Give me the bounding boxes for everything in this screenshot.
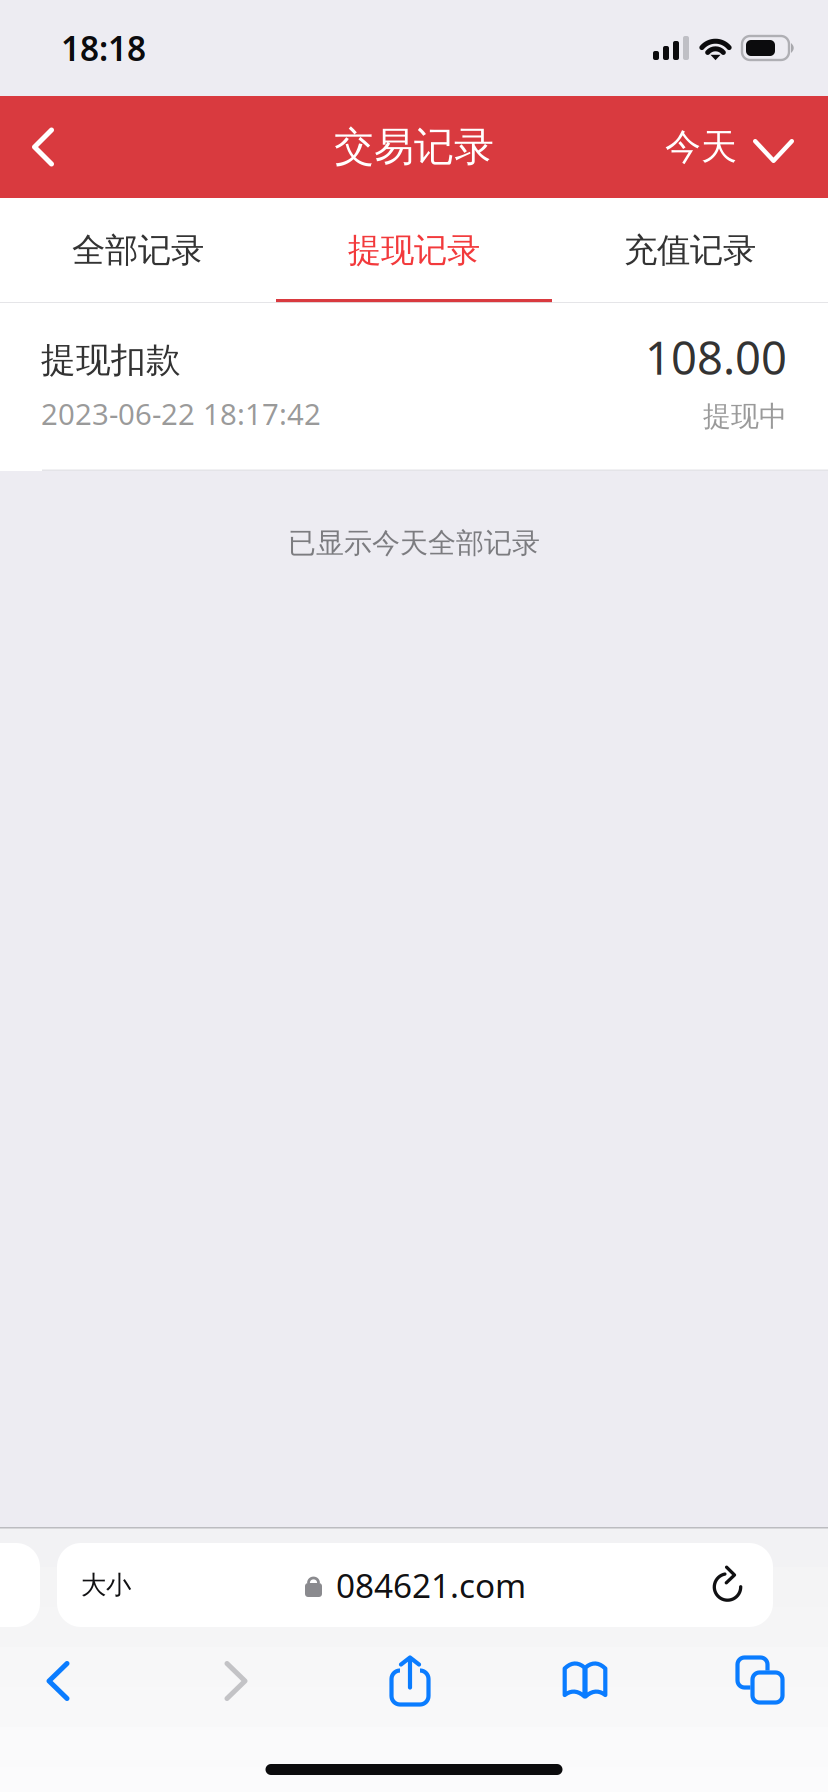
staticText: 已显示今天全部记录	[288, 526, 540, 560]
button[interactable]: Share	[358, 1646, 462, 1714]
staticText: 提现记录	[348, 230, 480, 271]
button[interactable]: 全部记录	[0, 198, 276, 303]
button[interactable]: 今天	[665, 96, 828, 198]
staticText: 全部记录	[72, 230, 204, 271]
staticText: 2023-06-22 18:17:42	[41, 394, 321, 433]
staticText: 提现中	[703, 399, 787, 434]
button[interactable]: Back	[0, 96, 86, 198]
staticText: 大小	[81, 1569, 131, 1600]
button[interactable]: 提现记录	[276, 198, 552, 303]
button[interactable]: Tabs	[708, 1646, 812, 1714]
staticText: 084621.com	[336, 1563, 526, 1607]
staticText: 今天	[665, 125, 737, 169]
button[interactable]: 大小	[57, 1543, 773, 1627]
staticText: 108.00	[645, 327, 787, 387]
button[interactable]: Forward	[184, 1647, 288, 1715]
staticText: 充值记录	[624, 230, 756, 271]
staticText: 提现扣款	[41, 339, 181, 382]
button[interactable]: Back	[6, 1647, 110, 1715]
button[interactable]: 充值记录	[552, 198, 828, 303]
button[interactable]: Bookmarks	[533, 1646, 637, 1714]
staticText: 18:18	[61, 26, 146, 70]
staticText: 交易记录	[334, 122, 494, 171]
button[interactable]: 提现扣款	[0, 303, 828, 471]
